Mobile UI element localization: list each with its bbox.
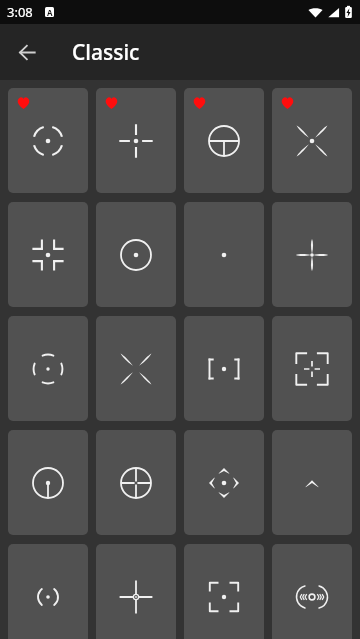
- staticText: Classic: [72, 38, 140, 67]
- button[interactable]: Reticle 18: [96, 544, 176, 639]
- button[interactable]: Reticle 16: [272, 430, 352, 535]
- button[interactable]: Reticle 10: [96, 316, 176, 421]
- staticText: A: [47, 7, 53, 17]
- button[interactable]: Reticle 13: [8, 430, 88, 535]
- button[interactable]: Reticle 17: [8, 544, 88, 639]
- button[interactable]: Reticle 7: [184, 202, 264, 307]
- button[interactable]: Reticle 15: [184, 430, 264, 535]
- button[interactable]: Reticle 4: [272, 88, 352, 193]
- button[interactable]: Reticle 9: [8, 316, 88, 421]
- button[interactable]: Reticle 1: [8, 88, 88, 193]
- button[interactable]: Reticle 5: [8, 202, 88, 307]
- button[interactable]: Reticle 12: [272, 316, 352, 421]
- button[interactable]: Back: [9, 34, 45, 70]
- button[interactable]: Reticle 2: [96, 88, 176, 193]
- button[interactable]: Reticle 8: [272, 202, 352, 307]
- staticText: 3:08: [7, 3, 33, 21]
- button[interactable]: Reticle 3: [184, 88, 264, 193]
- button[interactable]: Reticle 6: [96, 202, 176, 307]
- button[interactable]: Reticle 14: [96, 430, 176, 535]
- button[interactable]: Reticle 11: [184, 316, 264, 421]
- button[interactable]: Reticle 19: [184, 544, 264, 639]
- button[interactable]: Reticle 20: [272, 544, 352, 639]
